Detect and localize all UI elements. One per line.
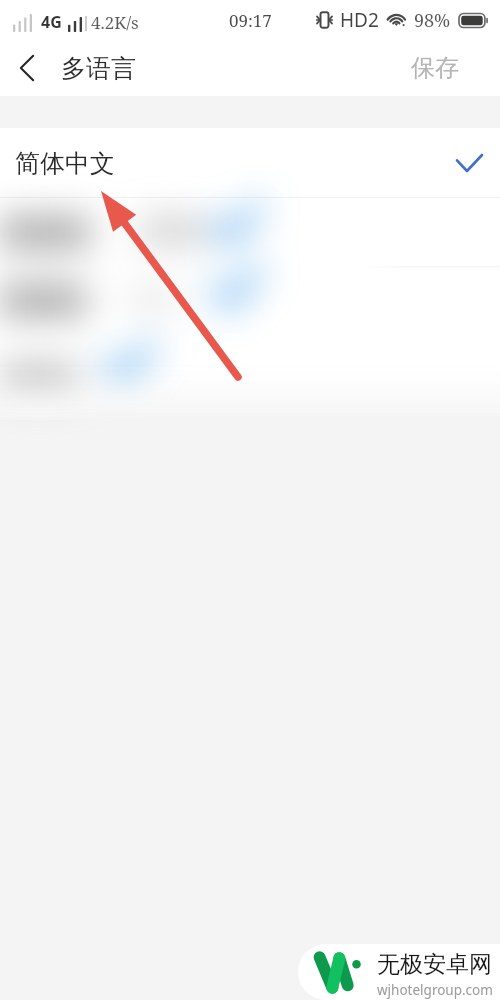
staticText: 4G xyxy=(41,11,62,33)
staticText: 09:17 xyxy=(229,9,272,32)
staticText: 4.2K/s xyxy=(91,11,139,34)
staticText: HD2 xyxy=(340,7,379,33)
staticText: 多语言 xyxy=(61,53,136,84)
staticText: 98% xyxy=(414,8,451,33)
button[interactable]: Back xyxy=(0,40,52,96)
staticText: 简体中文 xyxy=(15,148,115,179)
staticText: 无极安卓网 xyxy=(377,950,492,979)
button[interactable]: 保存 xyxy=(393,40,500,96)
staticText: 保存 xyxy=(411,53,459,83)
staticText: wjhotelgroup.com xyxy=(377,981,493,999)
button[interactable]: 简体中文 xyxy=(0,128,500,198)
